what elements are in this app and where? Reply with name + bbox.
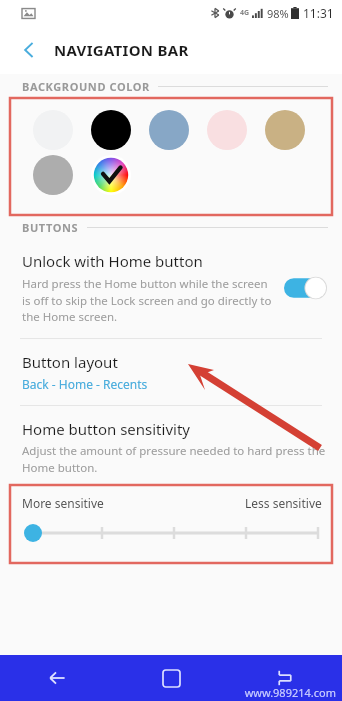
button[interactable]: Back (0, 655, 114, 701)
button[interactable]: Background colour option (265, 110, 305, 150)
button[interactable]: Button layout (0, 339, 342, 405)
staticText: www.989214.com (244, 685, 336, 700)
staticText: Button layout (22, 352, 118, 372)
button[interactable]: Recents (228, 655, 342, 701)
staticText: Adjust the amount of pressure needed to … (22, 443, 328, 475)
button[interactable]: Back (12, 33, 46, 67)
staticText: 98% (267, 6, 289, 21)
button[interactable]: Background colour option (33, 155, 73, 195)
button[interactable]: Custom colour (91, 155, 131, 195)
staticText: Less sensitive (245, 495, 322, 511)
staticText: 11:31 (303, 5, 334, 21)
staticText: NAVIGATION BAR (54, 40, 189, 60)
button[interactable]: Background colour option (207, 110, 247, 150)
staticText: BUTTONS (22, 220, 79, 235)
button[interactable]: Unlock with Home button toggle (284, 276, 328, 300)
staticText: More sensitive (22, 495, 104, 511)
staticText: Back - Home - Recents (22, 376, 148, 392)
staticText: Hard press the Home button while the scr… (22, 276, 274, 324)
staticText: BACKGROUND COLOR (22, 79, 150, 94)
button[interactable]: Background colour option (33, 110, 73, 150)
button[interactable]: Home (114, 655, 228, 701)
staticText: Unlock with Home button (22, 251, 203, 271)
button[interactable]: Home button sensitivity slider (22, 521, 322, 545)
staticText: Home button sensitivity (22, 419, 190, 439)
button[interactable]: Unlock with Home button (0, 239, 342, 338)
staticText: 4G (240, 8, 250, 18)
button[interactable]: Background colour option (149, 110, 189, 150)
button[interactable]: Background colour option (91, 110, 131, 150)
